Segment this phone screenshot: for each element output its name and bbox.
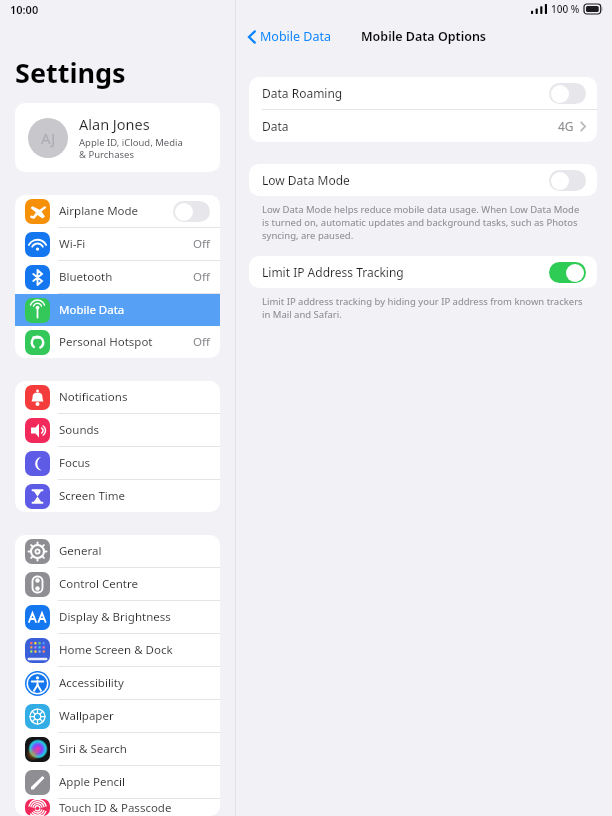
staticText: Wi-Fi	[59, 236, 193, 252]
button[interactable]: Home Screen & Dock	[15, 634, 220, 666]
button[interactable]: AJ	[15, 103, 220, 172]
staticText: General	[59, 543, 210, 559]
button[interactable]: Control Centre	[15, 568, 220, 600]
button[interactable]: Mobile Data	[15, 294, 220, 326]
button[interactable]: Notifications	[15, 381, 220, 413]
staticText: Control Centre	[59, 576, 210, 592]
button[interactable]: Display & Brightness	[15, 601, 220, 633]
button[interactable]: Touch ID & Passcode	[15, 799, 220, 816]
staticText: Personal Hotspot	[59, 334, 193, 350]
staticText: Data	[262, 118, 558, 134]
button[interactable]: Low Data Mode	[249, 164, 597, 196]
staticText: Notifications	[59, 389, 210, 405]
button[interactable]: Focus	[15, 447, 220, 479]
button[interactable]: Siri & Search	[15, 733, 220, 765]
button[interactable]: Accessibility	[15, 667, 220, 699]
staticText: 4G	[558, 118, 574, 134]
button[interactable]: Airplane Mode	[15, 195, 220, 227]
button[interactable]: Limit IP Address Tracking	[249, 256, 597, 288]
staticText: Limit IP address tracking by hiding your…	[262, 295, 588, 321]
staticText: Bluetooth	[59, 269, 193, 285]
staticText: Siri & Search	[59, 741, 210, 757]
button[interactable]: Sounds	[15, 414, 220, 446]
staticText: Touch ID & Passcode	[59, 800, 210, 816]
staticText: Focus	[59, 455, 210, 471]
staticText: Off	[193, 269, 210, 285]
button[interactable]: Personal Hotspot	[15, 326, 220, 358]
button[interactable]: Data	[249, 110, 597, 142]
button[interactable]: Data Roaming	[249, 77, 597, 109]
staticText: Alan Jones	[79, 114, 150, 134]
staticText: Low Data Mode helps reduce mobile data u…	[262, 203, 588, 242]
staticText: Airplane Mode	[59, 203, 173, 219]
staticText: Sounds	[59, 422, 210, 438]
button[interactable]: Bluetooth	[15, 261, 220, 293]
staticText: Data Roaming	[262, 85, 549, 101]
staticText: Settings	[15, 54, 126, 91]
staticText: Apple ID, iCloud, Media & Purchases	[79, 136, 183, 161]
staticText: Wallpaper	[59, 708, 210, 724]
button[interactable]: Off	[549, 170, 586, 191]
button[interactable]: General	[15, 535, 220, 567]
button[interactable]: On	[549, 262, 586, 283]
staticText: Limit IP Address Tracking	[262, 264, 549, 280]
staticText: Off	[193, 334, 210, 350]
staticText: Accessibility	[59, 675, 210, 691]
staticText: 10:00	[10, 2, 39, 17]
staticText: Low Data Mode	[262, 172, 549, 188]
staticText: Screen Time	[59, 488, 210, 504]
staticText: Home Screen & Dock	[59, 642, 210, 658]
button[interactable]: Off	[173, 201, 210, 222]
staticText: Mobile Data	[59, 302, 210, 318]
button[interactable]: Wallpaper	[15, 700, 220, 732]
button[interactable]: Mobile Data	[244, 25, 336, 48]
button[interactable]: Wi-Fi	[15, 228, 220, 260]
staticText: AJ	[41, 128, 56, 148]
staticText: Off	[193, 236, 210, 252]
staticText: Mobile Data Options	[361, 28, 487, 45]
staticText: Display & Brightness	[59, 609, 210, 625]
button[interactable]: Apple Pencil	[15, 766, 220, 798]
button[interactable]: Off	[549, 83, 586, 104]
staticText: Apple Pencil	[59, 774, 210, 790]
button[interactable]: Screen Time	[15, 480, 220, 512]
staticText: Mobile Data	[260, 28, 332, 45]
staticText: 100 %	[551, 2, 580, 16]
